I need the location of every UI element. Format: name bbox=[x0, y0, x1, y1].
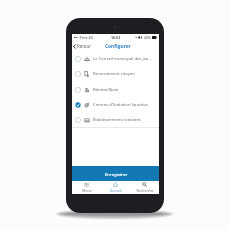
button[interactable]: Recherche bbox=[130, 181, 159, 194]
button[interactable]: Recensement citoyen bbox=[72, 66, 159, 81]
button[interactable]: Établissements scolaires bbox=[72, 112, 159, 127]
button[interactable]: Retour bbox=[72, 42, 94, 50]
button[interactable]: Enregistrer bbox=[72, 166, 159, 181]
button[interactable]: Menu bbox=[72, 181, 101, 194]
staticText: 16:52 bbox=[111, 35, 121, 40]
staticText: Enregistrer bbox=[105, 171, 128, 177]
staticText: Établissements scolaires bbox=[93, 117, 141, 123]
staticText: Menu bbox=[82, 188, 92, 193]
staticText: 44% bbox=[144, 35, 151, 40]
staticText: Bénévol'Aute bbox=[93, 87, 119, 93]
staticText: Retour bbox=[77, 43, 91, 49]
button[interactable]: Le Conseil municipal des jeu… bbox=[72, 51, 159, 66]
staticText: Accueil bbox=[110, 188, 122, 193]
button[interactable]: Accueil bbox=[101, 181, 130, 194]
staticText: Recherche bbox=[136, 188, 154, 193]
button[interactable]: Bénévol'Aute bbox=[72, 82, 159, 97]
staticText: Configurer bbox=[105, 43, 131, 50]
staticText: Free 4G bbox=[80, 35, 94, 40]
button[interactable]: Centres d'Initiation Sportive bbox=[72, 97, 159, 112]
staticText: Le Conseil municipal des jeu… bbox=[93, 56, 152, 62]
staticText: Centres d'Initiation Sportive bbox=[93, 102, 148, 108]
staticText: Recensement citoyen bbox=[93, 71, 135, 77]
